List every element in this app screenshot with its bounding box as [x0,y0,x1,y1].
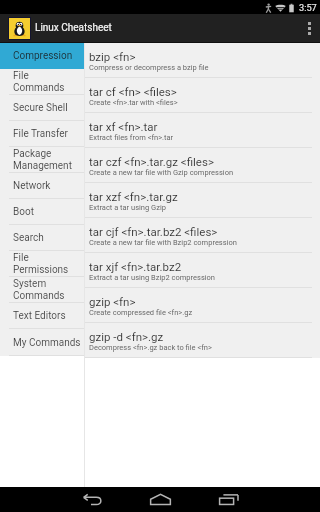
staticText: Text Editors [13,310,66,322]
button[interactable]: File Commands [0,69,84,95]
button[interactable]: tar czf <fn>.tar.gz <files> [85,148,320,183]
staticText: tar xjf <fn>.tar.bz2 [89,260,182,273]
staticText: tar cf <fn> <files> [89,85,177,98]
staticText: Search [13,232,44,244]
button[interactable]: tar xf <fn>.tar [85,113,320,148]
button[interactable]: tar xzf <fn>.tar.gz [85,183,320,218]
button[interactable]: gzip -d <fn>.gz [85,323,320,358]
button[interactable]: System Commands [0,277,84,303]
staticText: Package Management [13,148,81,172]
button[interactable]: bzip <fn> [85,43,320,78]
staticText: Extract a tar using Bzip2 compression [89,273,215,282]
staticText: Decompress <fn>.gz back to file <fn> [89,343,212,352]
staticText: Extract a tar using Gzip [89,203,166,212]
button[interactable]: Package Management [0,147,84,173]
staticText: Boot [13,206,34,218]
staticText: Create <fn>.tar with <files> [89,98,178,107]
button[interactable]: Home [140,487,180,512]
button[interactable]: My Commands [0,329,84,356]
staticText: Compress or decompress a bzip file [89,63,209,72]
staticText: 3:57 [299,2,317,13]
button[interactable]: tar cjf <fn>.tar.bz2 <files> [85,218,320,253]
button[interactable]: tar cf <fn> <files> [85,78,320,113]
staticText: gzip -d <fn>.gz [89,330,164,343]
staticText: File Transfer [13,128,68,140]
staticText: File Commands [13,70,81,94]
button[interactable]: Search [0,225,84,251]
button[interactable]: Back [72,487,112,512]
button[interactable]: Compression [0,43,84,69]
staticText: My Commands [13,337,81,349]
staticText: Create a new tar file with Bzip2 compres… [89,238,237,247]
button[interactable]: Network [0,173,84,199]
button[interactable]: File Transfer [0,121,84,147]
staticText: tar cjf <fn>.tar.bz2 <files> [89,225,218,238]
staticText: bzip <fn> [89,50,136,63]
button[interactable]: Secure Shell [0,95,84,121]
button[interactable]: Recent apps [209,487,249,512]
staticText: Compression [13,50,73,62]
staticText: File Permissions [13,252,81,276]
button[interactable]: gzip <fn> [85,288,320,323]
staticText: Network [13,180,51,192]
staticText: Linux Cheatsheet [35,22,112,34]
staticText: tar xf <fn>.tar [89,120,158,133]
staticText: Create compressed file <fn>.gz [89,308,193,317]
staticText: Create a new tar file with Gzip compress… [89,168,234,177]
button[interactable]: Boot [0,199,84,225]
staticText: gzip <fn> [89,295,136,308]
staticText: tar czf <fn>.tar.gz <files> [89,155,214,168]
staticText: Extract files from <fn>.tar [89,133,174,142]
button[interactable]: Text Editors [0,303,84,329]
staticText: Secure Shell [13,102,68,114]
staticText: System Commands [13,278,81,302]
button[interactable]: tar xjf <fn>.tar.bz2 [85,253,320,288]
button[interactable]: File Permissions [0,251,84,277]
staticText: tar xzf <fn>.tar.gz [89,190,178,203]
button[interactable]: More options [298,14,320,42]
